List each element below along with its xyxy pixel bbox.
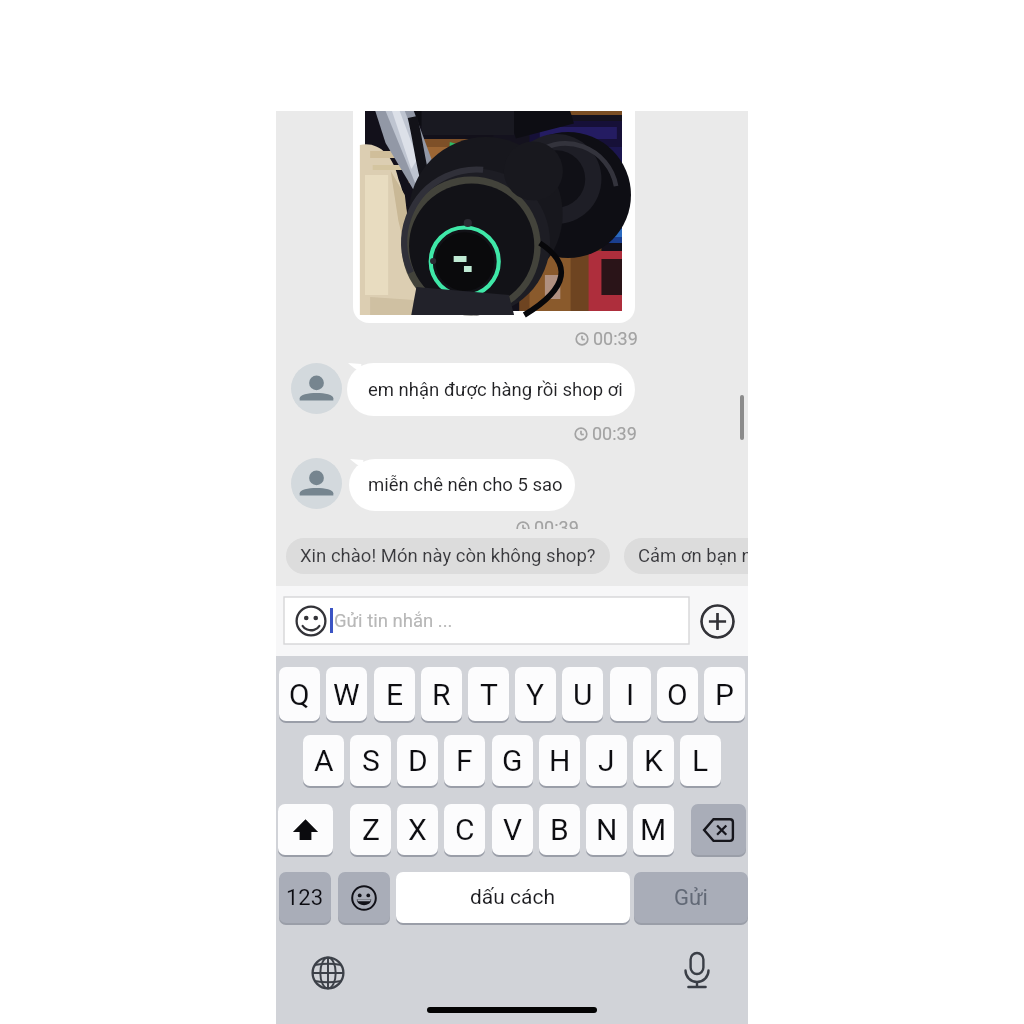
button[interactable]: Add attachment (700, 604, 735, 639)
staticText: em nhận được hàng rồi shop ơi (368, 379, 623, 401)
staticText: L (692, 743, 709, 778)
button[interactable]: E (374, 667, 415, 721)
button[interactable]: em nhận được hàng rồi shop ơi (347, 363, 635, 416)
button[interactable]: Z (350, 804, 391, 855)
button[interactable]: W (326, 667, 367, 721)
staticText: dấu cách (470, 885, 556, 910)
button[interactable]: F (444, 735, 485, 786)
button[interactable]: Change keyboard language (304, 949, 352, 997)
staticText: X (408, 812, 427, 847)
button[interactable]: B (539, 804, 580, 855)
staticText: G (502, 743, 523, 778)
staticText: J (598, 743, 615, 778)
staticText: Q (289, 677, 310, 712)
staticText: H (549, 743, 571, 778)
button[interactable]: Emoji keyboard (338, 872, 390, 923)
staticText: Gửi tin nhắn ... (334, 610, 453, 632)
staticText: 00:39 (593, 328, 638, 349)
staticText: S (362, 743, 380, 778)
staticText: miễn chê nên cho 5 sao (368, 474, 563, 496)
staticText: T (480, 677, 498, 712)
button[interactable] (353, 111, 635, 323)
button[interactable]: D (397, 735, 438, 786)
button[interactable]: S (350, 735, 391, 786)
staticText: C (455, 812, 475, 847)
button[interactable]: L (680, 735, 721, 786)
staticText: Z (362, 812, 380, 847)
staticText: U (573, 677, 593, 712)
button[interactable]: Xin chào! Món này còn không shop? (286, 538, 610, 574)
button[interactable]: R (421, 667, 462, 721)
button[interactable]: P (704, 667, 745, 721)
button[interactable]: C (444, 804, 485, 855)
button[interactable]: Gửi (634, 872, 748, 923)
staticText: W (333, 677, 360, 712)
staticText: I (626, 677, 635, 712)
button[interactable]: 123 (279, 872, 331, 923)
button[interactable]: I (610, 667, 651, 721)
staticText: 123 (286, 885, 324, 911)
button[interactable]: Voice input (673, 947, 721, 995)
button[interactable]: H (539, 735, 580, 786)
button[interactable]: A (303, 735, 344, 786)
button[interactable]: U (562, 667, 603, 721)
button[interactable]: dấu cách (396, 872, 630, 923)
button[interactable]: Shift (278, 804, 333, 855)
staticText: 00:39 (592, 423, 637, 444)
staticText: Cảm ơn bạn nhé! (638, 545, 748, 567)
button[interactable]: T (468, 667, 509, 721)
button[interactable]: Y (515, 667, 556, 721)
staticText: E (386, 677, 404, 712)
button[interactable]: Gửi tin nhắn ... (284, 597, 689, 644)
button[interactable]: V (492, 804, 533, 855)
staticText: D (408, 743, 428, 778)
staticText: 00:39 (534, 517, 579, 529)
button[interactable]: J (586, 735, 627, 786)
staticText: K (644, 743, 663, 778)
staticText: B (550, 812, 569, 847)
button[interactable]: K (633, 735, 674, 786)
button[interactable]: Contact avatar (291, 458, 342, 509)
staticText: Gửi (674, 885, 708, 911)
staticText: P (715, 677, 734, 712)
button[interactable]: Q (279, 667, 320, 721)
button[interactable]: miễn chê nên cho 5 sao (349, 459, 575, 511)
staticText: A (314, 743, 334, 778)
button[interactable]: Contact avatar (291, 363, 342, 414)
staticText: R (432, 677, 451, 712)
button[interactable]: N (586, 804, 627, 855)
staticText: V (503, 812, 523, 847)
button[interactable]: X (397, 804, 438, 855)
button[interactable]: Backspace (691, 804, 746, 855)
staticText: M (640, 812, 667, 847)
staticText: Xin chào! Món này còn không shop? (300, 545, 596, 567)
staticText: O (667, 677, 688, 712)
staticText: F (456, 743, 473, 778)
button[interactable]: G (492, 735, 533, 786)
button[interactable]: O (657, 667, 698, 721)
button[interactable]: M (633, 804, 674, 855)
button[interactable]: Cảm ơn bạn nhé! (624, 538, 748, 574)
staticText: N (596, 812, 618, 847)
staticText: Y (526, 677, 545, 712)
